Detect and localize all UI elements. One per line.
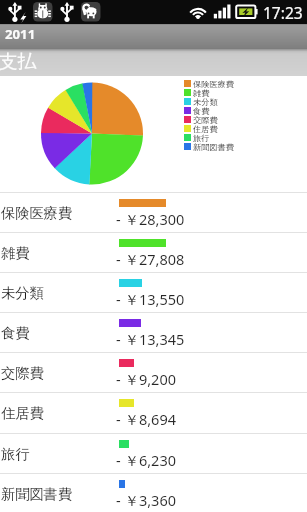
staticText: 未分類 [193,97,218,106]
button[interactable]: 保険医療費 [0,192,307,232]
staticText: 住居費 [1,404,44,422]
staticText: - ￥28,300 [116,209,185,229]
staticText: 食費 [193,106,210,115]
button[interactable]: 新聞図書費 [0,473,307,512]
staticText: 未分類 [1,284,44,302]
button[interactable]: 食費 [0,312,307,352]
button[interactable]: 交際費 [0,352,307,392]
staticText: 新聞図書費 [1,485,72,503]
staticText: 住居費 [193,124,218,133]
button[interactable]: 雑費 [0,232,307,272]
staticText: 雑費 [1,244,30,262]
staticText: 新聞図書費 [193,142,234,151]
staticText: 旅行 [193,133,210,142]
staticText: - ￥13,550 [116,289,185,309]
staticText: 交際費 [193,115,218,124]
staticText: - ￥13,345 [116,329,185,349]
staticText: - ￥27,808 [116,249,185,269]
staticText: 17:23 [263,2,303,23]
button[interactable]: 未分類 [0,272,307,312]
staticText: - ￥3,360 [116,490,177,510]
staticText: 旅行 [1,445,30,463]
staticText: 支払 [0,50,37,74]
staticText: 保険医療費 [1,204,72,222]
staticText: 保険医療費 [193,79,234,88]
staticText: 2011 [5,25,36,43]
staticText: 交際費 [1,364,44,382]
staticText: - ￥9,200 [116,369,177,389]
staticText: - ￥8,694 [116,409,177,429]
button[interactable]: 旅行 [0,433,307,473]
staticText: 雑費 [193,88,210,97]
button[interactable]: 住居費 [0,392,307,433]
other: Status bar [0,0,307,24]
staticText: 食費 [1,324,30,342]
staticText: - ￥6,230 [116,450,177,470]
